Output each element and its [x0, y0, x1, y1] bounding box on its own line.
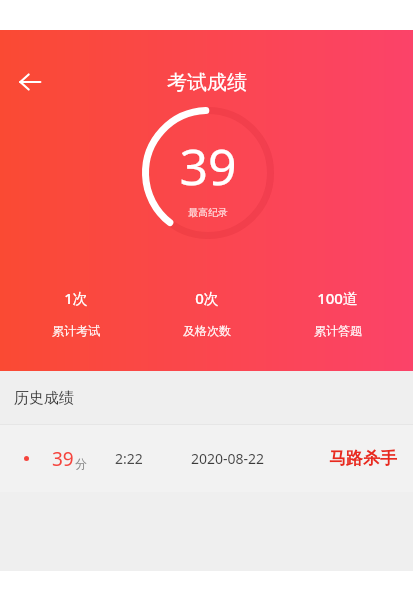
- staticText: 考试成绩: [167, 70, 247, 95]
- staticText: 最高纪录: [188, 206, 228, 219]
- button[interactable]: Back: [8, 60, 52, 104]
- staticText: 累计答题: [314, 323, 362, 338]
- staticText: 及格次数: [183, 323, 231, 338]
- staticText: 39: [52, 446, 74, 472]
- staticText: 马路杀手: [329, 448, 397, 469]
- button[interactable]: 100道: [272, 288, 403, 338]
- staticText: 2:22: [115, 449, 143, 468]
- staticText: 0次: [195, 288, 219, 308]
- button[interactable]: 0次: [141, 288, 272, 338]
- staticText: 100道: [317, 288, 358, 308]
- staticText: 分: [75, 456, 87, 471]
- staticText: 2020-08-22: [191, 449, 265, 468]
- button[interactable]: 1次: [10, 288, 141, 338]
- staticText: 1次: [64, 288, 88, 308]
- staticText: 历史成绩: [14, 389, 74, 408]
- staticText: 39: [179, 132, 237, 200]
- staticText: 累计考试: [52, 323, 100, 338]
- button[interactable]: 39: [0, 425, 413, 492]
